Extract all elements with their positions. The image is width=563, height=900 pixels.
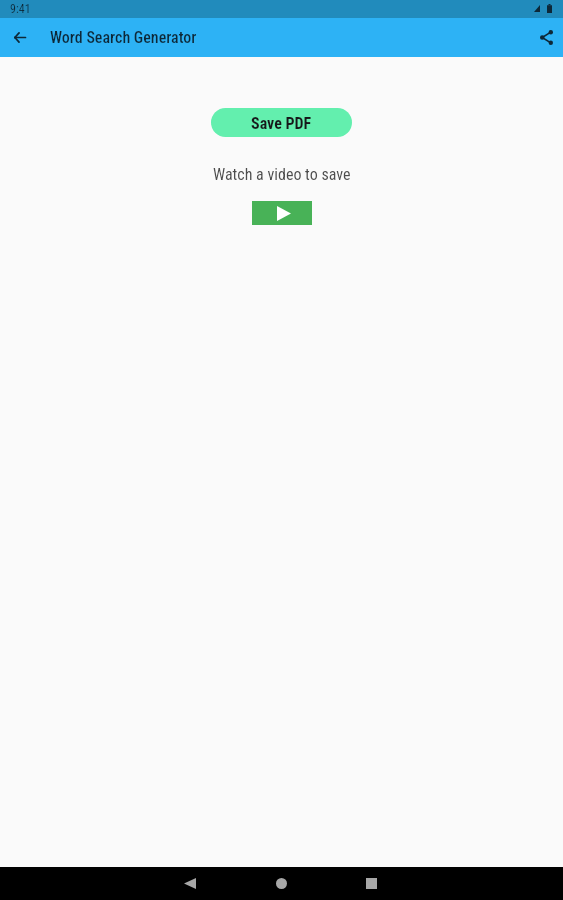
staticText: 9:41 (10, 2, 31, 16)
button[interactable]: Share (526, 18, 563, 57)
staticText: Word Search Generator (50, 28, 197, 47)
staticText: Save PDF (251, 114, 312, 133)
button[interactable]: Save PDF (211, 108, 352, 137)
button[interactable]: Navigate up (0, 18, 40, 57)
button[interactable]: Back (162, 867, 218, 900)
staticText: Watch a video to save (213, 165, 351, 184)
button[interactable]: Recent apps (343, 867, 399, 900)
button[interactable]: Watch video (252, 201, 312, 225)
button[interactable]: Home (253, 867, 309, 900)
